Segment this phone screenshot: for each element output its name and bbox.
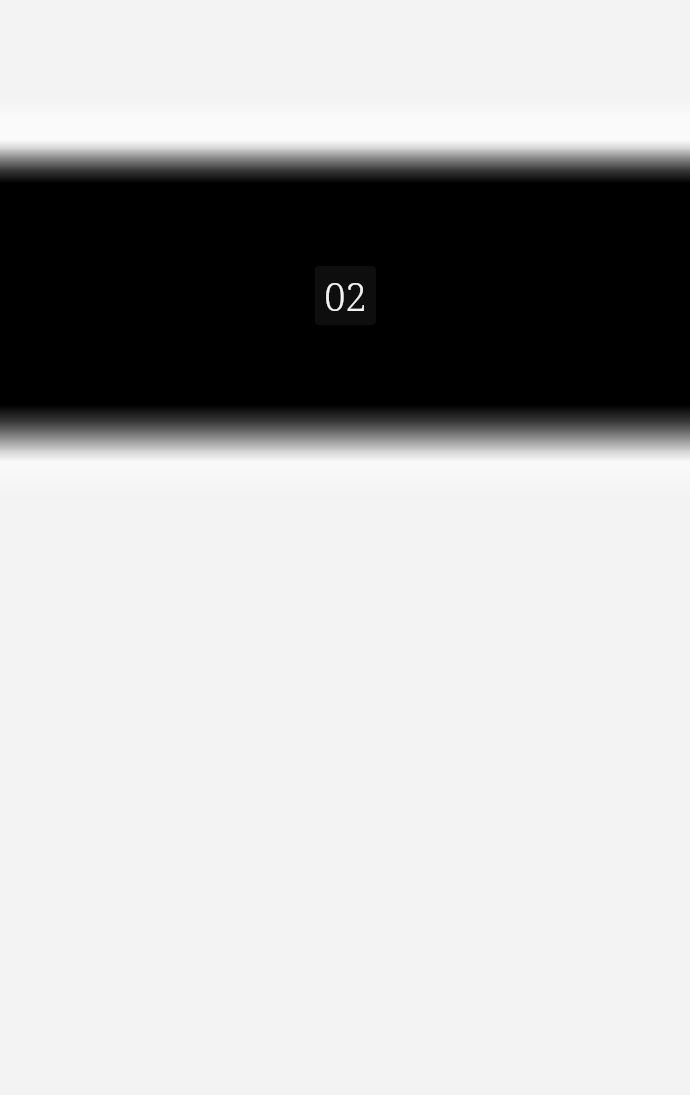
staticText: 02	[324, 270, 367, 322]
button[interactable]: Chapter 02	[315, 266, 376, 325]
